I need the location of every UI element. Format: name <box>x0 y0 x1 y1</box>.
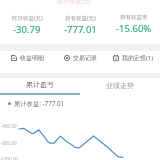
staticText: 收益明细 <box>20 54 44 62</box>
staticText: 累计收益: -777.01 <box>14 99 65 108</box>
staticText: 我的定投(1) <box>122 54 154 62</box>
button[interactable]: 持有收益率 <box>107 14 160 35</box>
button[interactable]: 累计盈亏 <box>0 75 80 95</box>
other: 收益明细 <box>11 55 17 61</box>
button[interactable]: 收益明细 <box>0 54 54 62</box>
staticText: -800.00 <box>1 140 17 146</box>
button[interactable]: 昨日收益(元) <box>0 14 54 36</box>
staticText: 累计盈亏 <box>26 80 54 89</box>
button[interactable]: 业绩走势 <box>80 75 160 95</box>
other: 我的定投(1) <box>113 55 119 61</box>
staticText: 持有收益率 <box>120 14 148 21</box>
staticText: 累计收益(元) <box>57 0 91 5</box>
button[interactable]: 持有收益(元) <box>54 14 107 36</box>
staticText: 昨日收益(元) <box>12 14 43 22</box>
other: 交易记录 <box>64 55 70 61</box>
staticText: -30.79 <box>13 23 41 36</box>
staticText: 交易记录 <box>73 54 97 62</box>
staticText: -777.01 <box>64 23 97 36</box>
staticText: -15.60% <box>116 22 152 35</box>
staticText: 业绩走势 <box>106 81 134 90</box>
staticText: -1200.00 <box>0 156 19 160</box>
button[interactable]: 交易记录 <box>54 54 107 62</box>
button[interactable]: 我的定投(1) <box>107 54 160 62</box>
staticText: 持有收益(元) <box>65 14 96 22</box>
staticText: -400.00 <box>1 123 17 129</box>
